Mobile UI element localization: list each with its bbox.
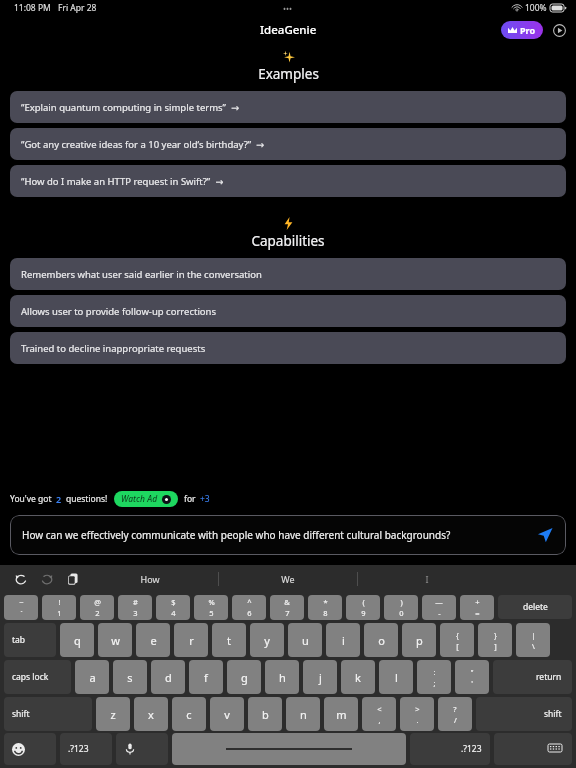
staticText: Watch Ad	[121, 493, 158, 505]
button[interactable]: “Got any creative ideas for a 10 year ol…	[10, 128, 566, 160]
button[interactable]: s	[113, 660, 147, 694]
button[interactable]: n	[286, 697, 320, 731]
button[interactable]: Hide keyboard	[494, 733, 572, 765]
button[interactable]: .?123	[60, 733, 112, 765]
button[interactable]: How can we effectively communicate with …	[10, 515, 566, 555]
button[interactable]: r	[174, 623, 208, 657]
button[interactable]: d	[151, 660, 185, 694]
button[interactable]: Space	[172, 733, 406, 765]
button[interactable]: h	[265, 660, 299, 694]
button[interactable]: #	[118, 595, 152, 620]
button[interactable]: e	[136, 623, 170, 657]
button[interactable]: .?123	[410, 733, 490, 765]
button[interactable]: Paste	[64, 570, 82, 588]
button[interactable]: c	[172, 697, 206, 731]
staticText: Trained to decline inappropriate request…	[21, 342, 206, 355]
button[interactable]: (	[346, 595, 380, 620]
button[interactable]: i	[326, 623, 360, 657]
button[interactable]: }	[478, 623, 512, 657]
button[interactable]: ^	[232, 595, 266, 620]
button[interactable]: —	[422, 595, 456, 620]
button[interactable]: $	[156, 595, 190, 620]
staticText: Capabilities	[251, 232, 325, 250]
button[interactable]: I	[358, 565, 496, 593]
button[interactable]: “How do I make an HTTP request in Swift?…	[10, 165, 566, 197]
button[interactable]: )	[384, 595, 418, 620]
button[interactable]: ~	[4, 595, 38, 620]
button[interactable]: Send	[534, 524, 556, 546]
button[interactable]: z	[96, 697, 130, 731]
staticText: `	[20, 608, 23, 618]
button[interactable]: x	[134, 697, 168, 731]
button[interactable]: &	[270, 595, 304, 620]
button[interactable]: <	[362, 697, 396, 731]
staticText: [	[456, 641, 459, 651]
button[interactable]: >	[400, 697, 434, 731]
button[interactable]: We	[219, 565, 357, 593]
button[interactable]: :	[417, 660, 451, 694]
button[interactable]: shift	[476, 697, 572, 731]
button[interactable]: m	[324, 697, 358, 731]
staticText: You've got	[10, 493, 52, 505]
staticText: 4	[171, 608, 176, 618]
button[interactable]: ?	[438, 697, 472, 731]
staticText: '	[471, 678, 473, 688]
button[interactable]: |	[516, 623, 550, 657]
staticText: @	[94, 597, 101, 607]
button[interactable]: y	[250, 623, 284, 657]
button[interactable]: a	[75, 660, 109, 694]
button[interactable]: shift	[4, 697, 92, 731]
button[interactable]: %	[194, 595, 228, 620]
button[interactable]: j	[303, 660, 337, 694]
staticText: 2	[95, 608, 100, 618]
button[interactable]: {	[440, 623, 474, 657]
button[interactable]: “Explain quantum computing in simple ter…	[10, 91, 566, 123]
staticText: 0	[399, 608, 404, 618]
staticText: l	[395, 670, 398, 685]
button[interactable]: b	[248, 697, 282, 731]
staticText: •••	[283, 3, 293, 14]
button[interactable]: Redo	[38, 570, 56, 588]
button[interactable]: Dictation	[116, 733, 168, 765]
button[interactable]: +	[460, 595, 494, 620]
button[interactable]: @	[80, 595, 114, 620]
button[interactable]: g	[227, 660, 261, 694]
staticText: for	[184, 493, 196, 505]
staticText: j	[319, 670, 322, 685]
staticText: 2	[56, 493, 62, 505]
button[interactable]: w	[98, 623, 132, 657]
button[interactable]: Emoji	[4, 733, 56, 765]
button[interactable]: Undo	[12, 570, 30, 588]
button[interactable]: t	[212, 623, 246, 657]
button[interactable]: Allows user to provide follow-up correct…	[10, 295, 566, 327]
button[interactable]: Watch Ad	[114, 491, 178, 507]
staticText: h	[279, 670, 286, 685]
button[interactable]: l	[379, 660, 413, 694]
button[interactable]: delete	[498, 595, 572, 619]
button[interactable]: !	[42, 595, 76, 620]
button[interactable]: *	[308, 595, 342, 620]
button[interactable]: Remembers what user said earlier in the …	[10, 258, 566, 290]
staticText: return	[536, 671, 562, 683]
button[interactable]: v	[210, 697, 244, 731]
button[interactable]: Play	[550, 21, 568, 39]
button[interactable]: return	[493, 660, 572, 694]
staticText: k	[355, 670, 361, 685]
button[interactable]: p	[402, 623, 436, 657]
staticText: delete	[523, 601, 548, 613]
button[interactable]: Pro	[501, 21, 543, 39]
button[interactable]: How	[81, 565, 218, 593]
staticText: ?	[453, 704, 457, 714]
staticText: e	[150, 633, 157, 648]
button[interactable]: f	[189, 660, 223, 694]
button[interactable]: Trained to decline inappropriate request…	[10, 332, 566, 364]
button[interactable]: o	[364, 623, 398, 657]
button[interactable]: tab	[4, 623, 56, 657]
button[interactable]: caps lock	[4, 660, 71, 694]
button[interactable]: k	[341, 660, 375, 694]
staticText: :	[433, 667, 436, 677]
button[interactable]: u	[288, 623, 322, 657]
button[interactable]: q	[60, 623, 94, 657]
button[interactable]: "	[455, 660, 489, 694]
staticText: ~	[19, 597, 24, 607]
